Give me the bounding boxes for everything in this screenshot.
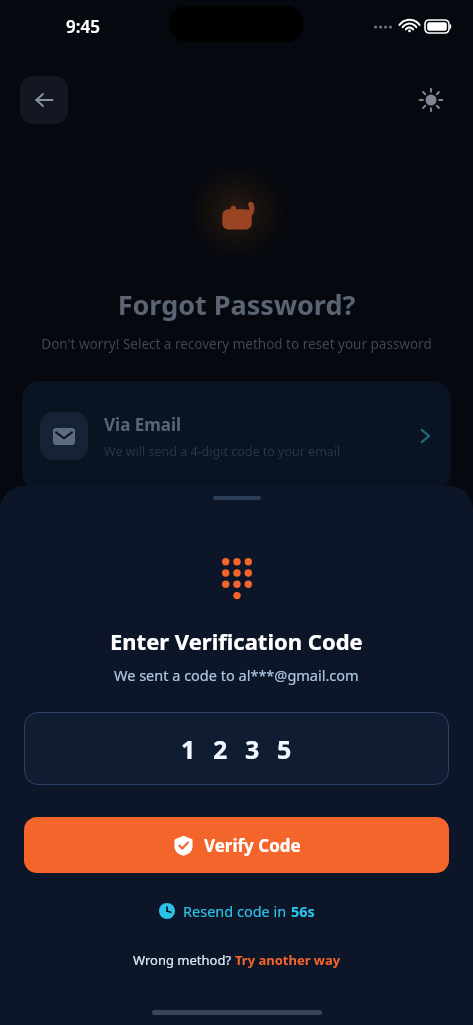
staticText: Try another way bbox=[235, 951, 341, 969]
button[interactable]: 1 bbox=[24, 712, 449, 785]
button[interactable]: Brightness bbox=[409, 78, 453, 122]
button[interactable]: Back bbox=[20, 76, 68, 124]
staticText: 2 bbox=[213, 732, 228, 766]
button[interactable]: Via Email bbox=[40, 381, 433, 491]
staticText: 5 bbox=[277, 732, 292, 766]
staticText: Don't worry! Select a recovery method to… bbox=[22, 335, 451, 353]
staticText: Verify Code bbox=[204, 834, 301, 857]
staticText: 3 bbox=[245, 732, 260, 766]
staticText: Enter Verification Code bbox=[110, 626, 363, 656]
staticText: 1 bbox=[181, 732, 196, 766]
staticText: Resend code in bbox=[183, 901, 291, 921]
staticText: Forgot Password? bbox=[0, 286, 473, 323]
staticText: We sent a code to al***@gmail.com bbox=[114, 665, 359, 685]
staticText: We will send a 4-digit code to your emai… bbox=[104, 443, 341, 460]
staticText: 56s bbox=[291, 901, 315, 921]
staticText: Wrong method? bbox=[133, 951, 235, 969]
staticText: Via Email bbox=[104, 413, 182, 436]
staticText: 9:45 bbox=[66, 15, 100, 38]
button[interactable]: Verify Code bbox=[24, 817, 449, 873]
button[interactable]: Wrong method? bbox=[123, 945, 351, 975]
button[interactable]: Resend code in bbox=[149, 895, 325, 927]
